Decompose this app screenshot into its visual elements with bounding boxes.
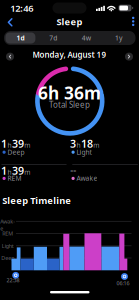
button[interactable]: Next day [125,53,133,61]
staticText: 1d [16,34,24,42]
staticText: 1 [1,164,7,178]
staticText: Deep [7,148,24,156]
button[interactable]: 4w [70,31,103,45]
staticText: 39 [12,164,24,178]
staticText: h [76,141,80,150]
button[interactable]: Range start [12,272,19,279]
button[interactable]: Previous day [6,53,14,61]
staticText: Awake [0,218,15,232]
staticText: 7d [49,34,57,42]
staticText: Light [76,148,91,156]
button[interactable]: 7d [37,31,70,45]
button[interactable]: 1y [103,31,135,45]
staticText: Monday, August 19 [32,49,106,60]
staticText: Sleep Timeline [2,194,71,206]
staticText: Light [2,242,14,249]
staticText: Awake [76,174,97,183]
staticText: m [93,141,99,150]
button[interactable]: Back [0,0,20,30]
staticText: m [24,168,30,177]
staticText: 4w [82,34,91,42]
staticText: 39 [12,137,24,151]
staticText: REM [2,230,13,237]
button[interactable]: Range end [121,273,128,280]
button[interactable]: 1d [4,31,37,45]
staticText: 18 [81,137,93,151]
staticText: 1y [115,34,123,42]
staticText: 3 [70,137,76,151]
staticText: m [24,141,30,150]
staticText: 06:16 [117,280,130,287]
staticText: Sleep [56,15,82,28]
staticText: 1 [1,137,7,151]
staticText: REM [7,174,21,183]
staticText: 6h 36m [38,81,101,104]
staticText: -- [70,164,76,176]
staticText: h [7,168,11,177]
staticText: h [7,141,11,150]
staticText: Deep [1,254,14,262]
staticText: 12:46 [10,2,33,14]
staticText: 22:38 [7,277,20,284]
button[interactable]: More [0,0,139,30]
staticText: Total Sleep [49,99,90,110]
